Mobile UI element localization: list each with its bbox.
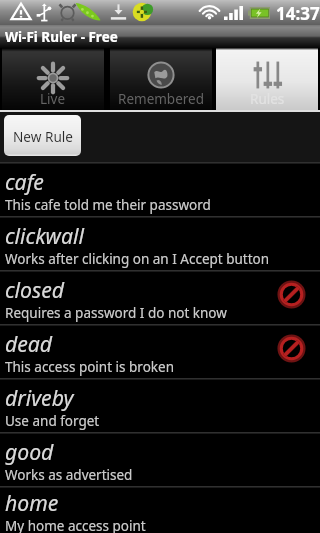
button[interactable]: cafe [0,164,320,216]
staticText: Wi-Fi Ruler - Free [5,28,118,46]
staticText: This cafe told me their password [5,196,211,214]
other: Blocked rule [278,281,305,308]
staticText: Works after clicking on an I Accept butt… [5,250,270,268]
staticText: good [5,437,54,466]
button[interactable]: Live [2,48,104,110]
staticText: clickwall [5,221,84,250]
button[interactable]: New Rule [4,115,81,156]
staticText: New Rule [13,127,73,146]
staticText: cafe [5,167,44,196]
button[interactable]: Rules [216,48,318,110]
button[interactable]: home [0,488,320,533]
staticText: Use and forget [5,412,100,430]
staticText: Requires a password I do not know [5,304,227,322]
other: Blocked rule [278,335,305,362]
staticText: This access point is broken [5,358,174,376]
staticText: Live [40,90,66,108]
staticText: My home access point [5,517,146,533]
button[interactable]: driveby [0,380,320,432]
staticText: closed [5,275,64,304]
staticText: home [5,488,59,517]
button[interactable]: closed [0,272,320,324]
staticText: dead [5,329,53,358]
staticText: driveby [5,383,74,412]
staticText: Remembered [118,90,205,108]
button[interactable]: dead [0,326,320,378]
staticText: 14:37 [276,2,320,25]
button[interactable]: clickwall [0,218,320,270]
staticText: Rules [250,90,285,108]
button[interactable]: good [0,434,320,486]
staticText: Works as advertised [5,466,133,484]
button[interactable]: Remembered [110,48,212,110]
